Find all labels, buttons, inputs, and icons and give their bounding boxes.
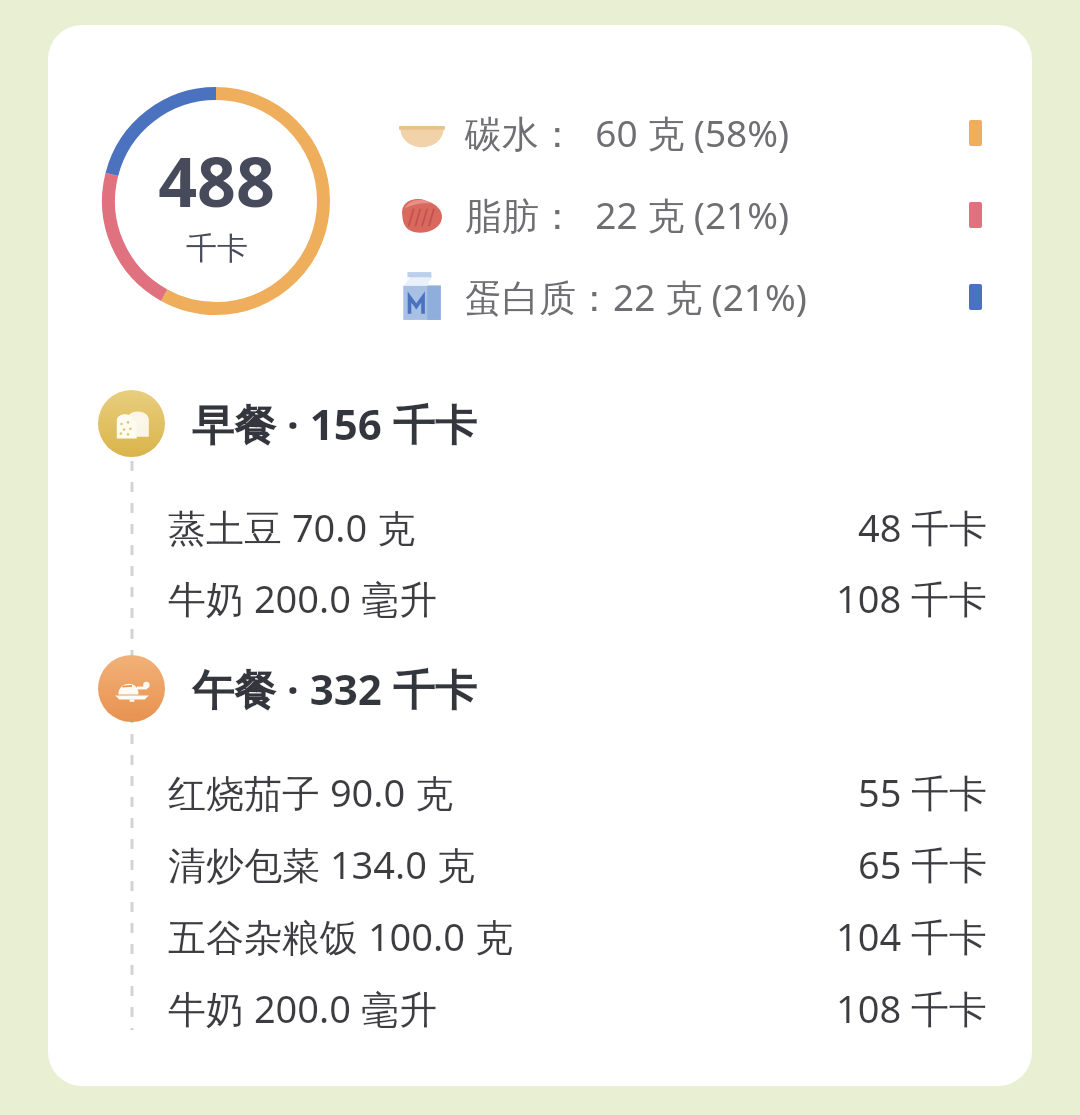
button[interactable]: 碳水： 60 克 (58%) — [393, 99, 993, 165]
button[interactable]: 红烧茄子 90.0 克 — [168, 761, 988, 823]
staticText: 牛奶 200.0 毫升 — [168, 982, 437, 1034]
staticText: 午餐 · 332 千卡 — [192, 660, 477, 717]
staticText: 108 千卡 — [836, 572, 988, 624]
button[interactable]: 蛋白质：22 克 (21%) — [393, 263, 993, 329]
staticText: 蒸土豆 70.0 克 — [168, 501, 416, 553]
staticText: 65 千卡 — [858, 838, 988, 890]
button[interactable]: 牛奶 200.0 毫升 — [168, 977, 988, 1039]
staticText: 108 千卡 — [836, 982, 988, 1034]
button[interactable]: 牛奶 200.0 毫升 — [168, 567, 988, 629]
other: Breakfast — [98, 390, 165, 457]
staticText: 清炒包菜 134.0 克 — [168, 838, 475, 890]
staticText: 碳水： 60 克 (58%) — [465, 107, 790, 158]
staticText: 104 千卡 — [836, 910, 988, 962]
button[interactable]: Lunch — [98, 645, 988, 731]
staticText: 五谷杂粮饭 100.0 克 — [168, 910, 513, 962]
staticText: 488 — [158, 134, 275, 227]
button[interactable]: 488 — [100, 85, 332, 317]
staticText: 蛋白质：22 克 (21%) — [465, 271, 807, 322]
staticText: 55 千卡 — [858, 766, 988, 818]
staticText: 千卡 — [186, 229, 248, 268]
button[interactable]: 五谷杂粮饭 100.0 克 — [168, 905, 988, 967]
staticText: 红烧茄子 90.0 克 — [168, 766, 454, 818]
button[interactable]: Breakfast — [98, 380, 988, 466]
button[interactable]: 脂肪： 22 克 (21%) — [393, 181, 993, 247]
button[interactable]: 清炒包菜 134.0 克 — [168, 833, 988, 895]
staticText: 48 千卡 — [858, 501, 988, 553]
staticText: 脂肪： 22 克 (21%) — [465, 189, 790, 240]
staticText: 牛奶 200.0 毫升 — [168, 572, 437, 624]
staticText: 早餐 · 156 千卡 — [192, 395, 477, 452]
other: Lunch — [98, 655, 165, 722]
button[interactable]: 蒸土豆 70.0 克 — [168, 496, 988, 558]
